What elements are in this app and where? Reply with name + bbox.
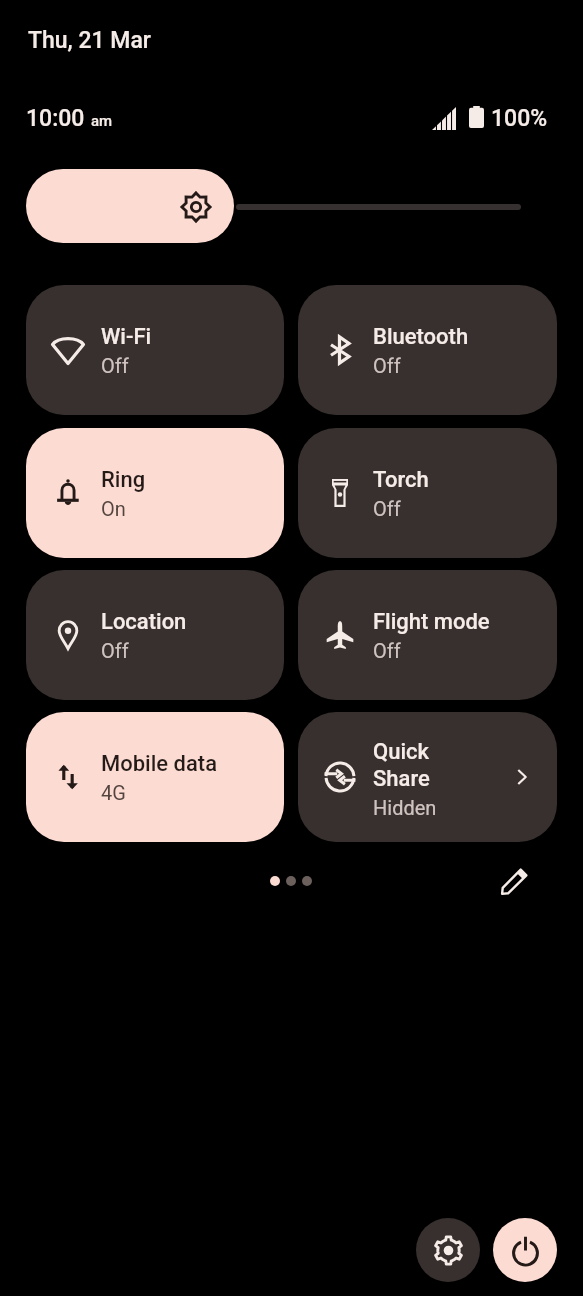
button[interactable]: Edit tiles (498, 866, 532, 896)
button[interactable]: Power (493, 1218, 557, 1282)
button[interactable]: Settings (416, 1218, 480, 1282)
button[interactable]: Page 1 (270, 876, 280, 886)
button[interactable]: Page 3 (302, 876, 312, 886)
staticText: Off (373, 497, 401, 520)
staticText: Location (101, 609, 187, 635)
staticText: Thu, 21 Mar (28, 27, 151, 54)
button[interactable]: Bluetooth (298, 285, 557, 415)
button[interactable]: Mobile data (26, 712, 284, 842)
button[interactable]: Page 2 (286, 876, 296, 886)
button[interactable]: Brightness (26, 169, 557, 243)
staticText: Off (101, 639, 129, 662)
button[interactable]: Torch (298, 428, 557, 558)
staticText: 100% (491, 105, 548, 131)
button[interactable]: Location (26, 570, 284, 700)
staticText: am (91, 112, 113, 130)
staticText: 4G (101, 781, 126, 804)
button[interactable]: Wi-Fi (26, 285, 284, 415)
staticText: Torch (373, 467, 429, 493)
staticText: Off (373, 354, 401, 377)
staticText: 10:00 (26, 105, 85, 131)
staticText: Ring (101, 467, 146, 493)
staticText: On (101, 497, 126, 520)
button[interactable]: Quick Share (298, 712, 557, 842)
staticText: Bluetooth (373, 324, 469, 350)
staticText: Hidden (373, 796, 437, 819)
staticText: Flight mode (373, 609, 490, 635)
button[interactable]: Ring (26, 428, 284, 558)
staticText: Quick Share (373, 739, 430, 792)
button[interactable]: Flight mode (298, 570, 557, 700)
staticText: Off (101, 354, 129, 377)
staticText: Mobile data (101, 751, 217, 777)
staticText: Off (373, 639, 401, 662)
staticText: Wi-Fi (101, 324, 152, 350)
